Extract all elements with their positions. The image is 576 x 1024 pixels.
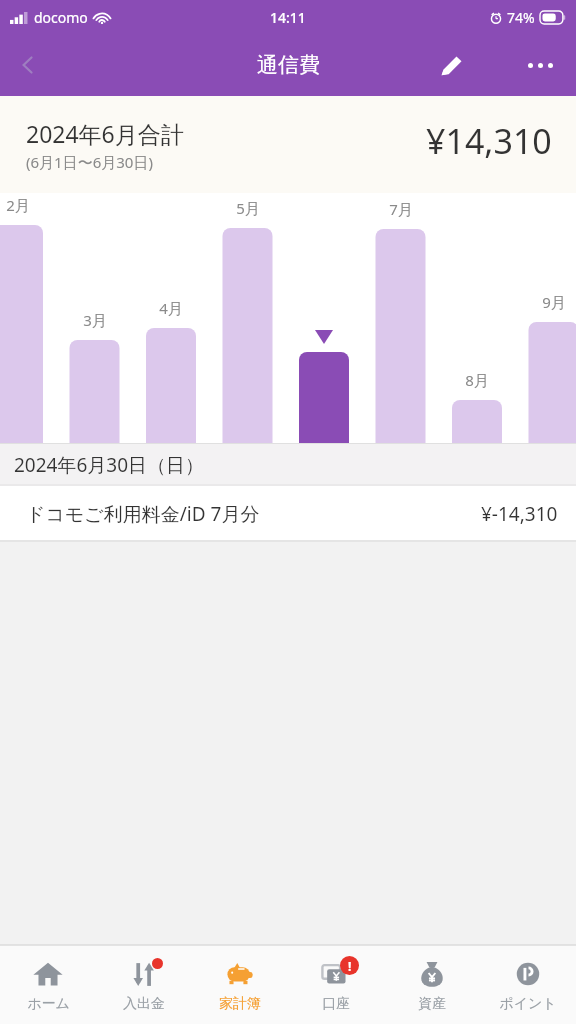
button[interactable]: 資産: [384, 946, 480, 1024]
button[interactable]: ポイント: [480, 946, 576, 1024]
staticText: docomo: [34, 8, 88, 27]
staticText: ポイント: [499, 995, 557, 1013]
button[interactable]: 家計簿: [192, 946, 288, 1024]
button[interactable]: Edit: [426, 39, 478, 91]
staticText: 2024年6月合計: [26, 118, 184, 149]
staticText: 9月: [542, 292, 566, 312]
staticText: 5月: [236, 198, 260, 218]
staticText: 74%: [507, 8, 535, 27]
staticText: 3月: [83, 310, 107, 330]
staticText: 2月: [6, 195, 30, 215]
staticText: 家計簿: [219, 995, 261, 1013]
button[interactable]: 入出金: [96, 946, 192, 1024]
staticText: ¥-14,310: [481, 501, 558, 527]
button[interactable]: More options: [514, 39, 566, 91]
staticText: 通信費: [257, 52, 320, 78]
staticText: !: [348, 958, 352, 974]
staticText: ¥14,310: [426, 118, 552, 164]
staticText: 資産: [418, 995, 446, 1013]
staticText: 14:11: [270, 8, 306, 27]
staticText: 4月: [159, 298, 183, 318]
staticText: 入出金: [123, 995, 165, 1013]
staticText: 2024年6月30日（日）: [14, 452, 205, 478]
staticText: 7月: [389, 199, 413, 219]
button[interactable]: Back: [0, 37, 56, 93]
staticText: ホーム: [27, 995, 70, 1013]
button[interactable]: ホーム: [0, 946, 96, 1024]
staticText: (6月1日〜6月30日): [26, 152, 153, 172]
staticText: 8月: [465, 370, 489, 390]
button[interactable]: ドコモご利用料金/iD 7月分: [0, 486, 576, 542]
button[interactable]: !: [288, 946, 384, 1024]
staticText: 口座: [322, 995, 350, 1013]
button[interactable]: 2月: [0, 193, 576, 444]
staticText: ドコモご利用料金/iD 7月分: [26, 501, 260, 527]
